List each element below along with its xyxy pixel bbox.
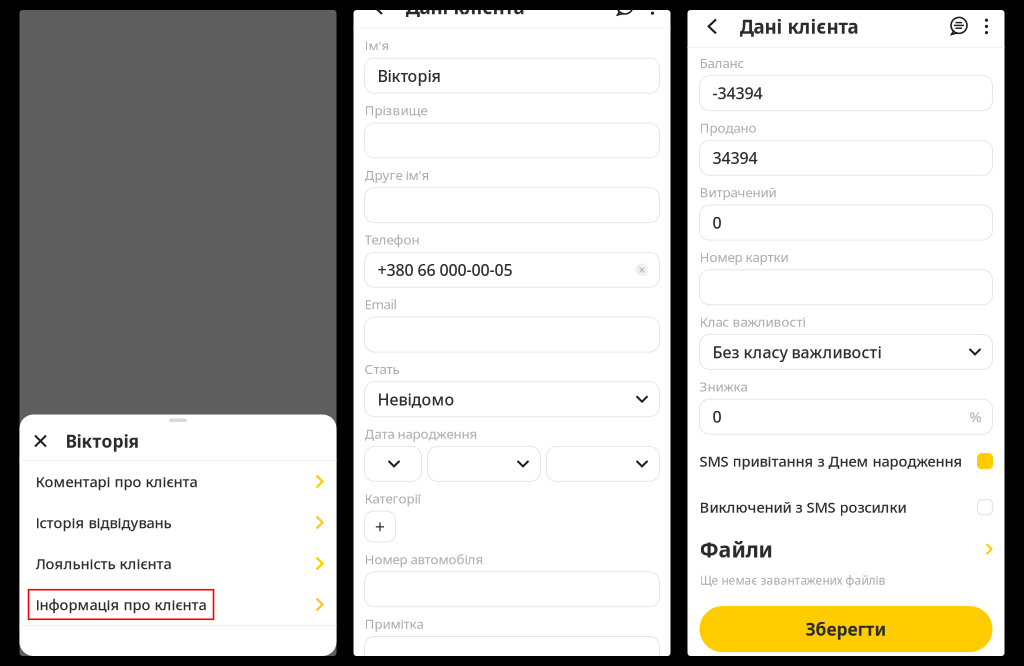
staticText: Знижка <box>699 377 747 395</box>
button[interactable]: More options <box>974 7 998 45</box>
staticText: Друге ім'я <box>364 166 429 184</box>
staticText: × <box>638 262 645 278</box>
staticText: Примітка <box>364 615 423 632</box>
button[interactable]: SMS привітання з Днем народження <box>699 442 992 480</box>
button[interactable]: Add category <box>364 511 395 542</box>
staticText: Інформація про клієнта <box>35 595 206 614</box>
staticText: Email <box>364 295 396 313</box>
staticText: Телефон <box>364 231 419 248</box>
staticText: + <box>375 515 385 538</box>
staticText: Ім'я <box>364 36 389 54</box>
staticText: Вікторія <box>377 65 440 86</box>
staticText: Стать <box>364 360 399 378</box>
staticText: Баланс <box>699 54 744 72</box>
button[interactable]: Зберегти <box>699 606 992 652</box>
staticText: Файли <box>699 535 772 563</box>
staticText: Вікторія <box>65 429 138 452</box>
staticText: Дата народження <box>364 425 477 442</box>
staticText: Історія відвідувань <box>35 513 171 532</box>
button[interactable]: Історія відвідувань <box>19 502 336 543</box>
staticText: 0 <box>712 406 721 427</box>
staticText: SMS привітання з Днем народження <box>699 451 962 471</box>
button[interactable]: Messages <box>610 0 640 26</box>
button[interactable]: More options <box>640 0 664 26</box>
button[interactable]: Файли <box>699 534 992 564</box>
staticText: Зберегти <box>805 618 886 641</box>
staticText: Дані клієнта <box>405 0 524 19</box>
button[interactable]: Close <box>25 426 55 456</box>
button[interactable]: Лояльність клієнта <box>19 543 336 584</box>
staticText: Виключений з SMS розсилки <box>699 497 906 517</box>
staticText: % <box>969 407 981 426</box>
staticText: Лояльність клієнта <box>35 554 171 573</box>
button[interactable]: Back <box>695 7 729 45</box>
button[interactable]: Коментарі про клієнта <box>19 461 336 502</box>
staticText: Дані клієнта <box>739 14 858 39</box>
staticText: Без класу важливості <box>712 341 881 362</box>
staticText: 34394 <box>712 147 757 168</box>
staticText: Ще немає завантажених файлів <box>699 572 885 588</box>
button[interactable]: Інформація про клієнта <box>19 584 336 625</box>
staticText: Клас важливості <box>699 313 805 330</box>
staticText: Номер автомобіля <box>364 550 483 568</box>
staticText: Невідомо <box>377 389 454 410</box>
staticText: Номер картки <box>699 248 788 266</box>
button[interactable]: Виключений з SMS розсилки <box>699 488 992 526</box>
staticText: Витрачений <box>699 183 776 201</box>
staticText: Категорії <box>364 489 420 507</box>
staticText: Продано <box>699 119 756 136</box>
staticText: +380 66 000-00-05 <box>377 259 512 280</box>
staticText: -34394 <box>712 82 762 104</box>
button[interactable]: Back <box>361 0 395 26</box>
staticText: Прізвище <box>364 101 427 119</box>
button[interactable]: Messages <box>944 7 974 45</box>
staticText: 0 <box>712 212 721 233</box>
staticText: Коментарі про клієнта <box>35 472 197 491</box>
